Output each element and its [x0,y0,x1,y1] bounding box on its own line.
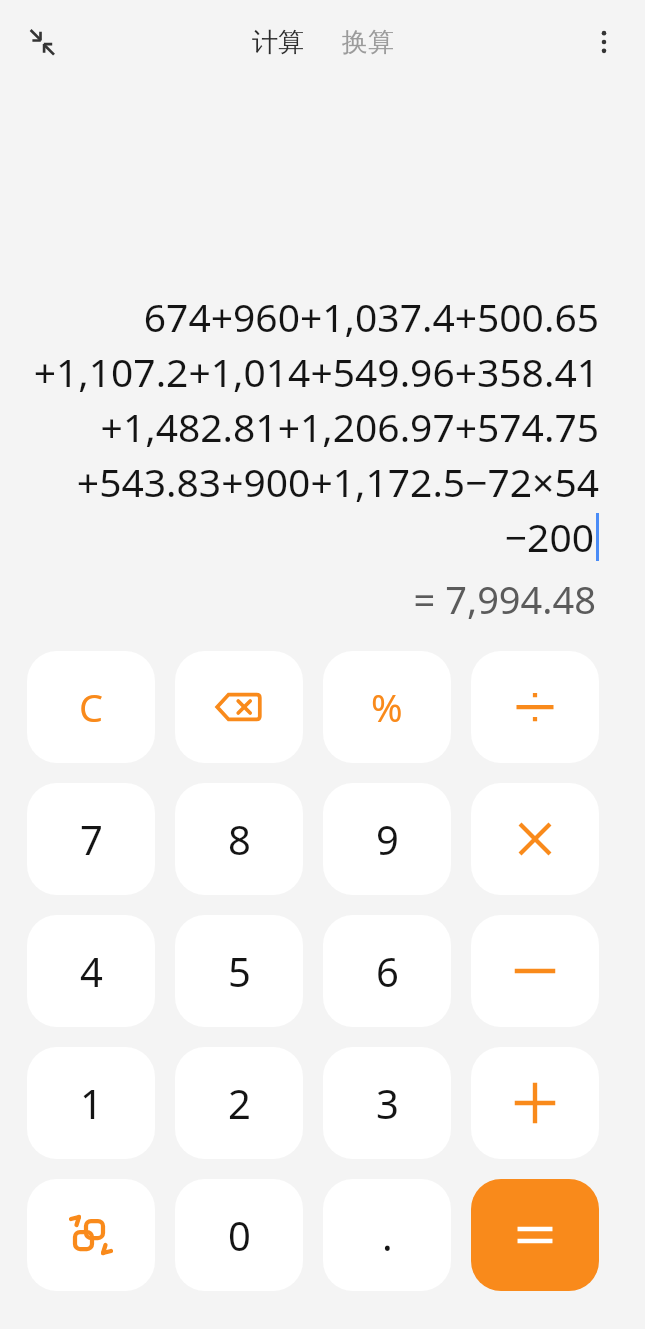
staticText: 674+960+1,037.4+500.65 [143,290,599,343]
staticText: 4 [80,944,103,998]
button[interactable]: Multiply [471,783,599,895]
button[interactable]: 5 [175,915,303,1027]
staticText: 8 [228,812,251,866]
button[interactable]: Equals [471,1179,599,1291]
button[interactable]: 换算 [334,20,402,65]
staticText: −200 [504,510,594,563]
staticText: +1,482.81+1,206.97+574.75 [100,400,599,453]
staticText: +543.83+900+1,172.5−72×54 [76,455,599,508]
staticText: 计算 [252,26,304,59]
staticText: +1,107.2+1,014+549.96+358.41 [33,345,599,398]
button[interactable]: Collapse [14,14,70,70]
button[interactable]: 6 [323,915,451,1027]
staticText: 7 [80,812,103,866]
staticText: % [371,681,403,733]
staticText: = 7,994.48 [413,573,596,625]
button[interactable]: % [323,651,451,763]
button[interactable]: Minus [471,915,599,1027]
button[interactable]: 计算 [244,20,312,65]
button[interactable]: 2 [175,1047,303,1159]
button[interactable]: Backspace [175,651,303,763]
staticText: 3 [376,1076,399,1130]
button[interactable]: . [323,1179,451,1291]
button[interactable]: 4 [27,915,155,1027]
staticText: 0 [228,1208,251,1262]
button[interactable]: 7 [27,783,155,895]
button[interactable]: C [27,651,155,763]
staticText: 1 [80,1076,103,1130]
button[interactable]: Divide [471,651,599,763]
button[interactable]: 3 [323,1047,451,1159]
staticText: 2 [228,1076,251,1130]
button[interactable]: 1 [27,1047,155,1159]
staticText: . [382,1208,393,1262]
button[interactable]: 0 [175,1179,303,1291]
staticText: 6 [376,944,399,998]
staticText: 9 [376,812,399,866]
button[interactable]: Plus [471,1047,599,1159]
button[interactable]: 9 [323,783,451,895]
staticText: C [79,681,104,733]
button[interactable]: More functions [27,1179,155,1291]
staticText: 5 [228,944,251,998]
staticText: 换算 [342,26,394,59]
button[interactable]: 8 [175,783,303,895]
button[interactable]: More options [577,15,631,69]
